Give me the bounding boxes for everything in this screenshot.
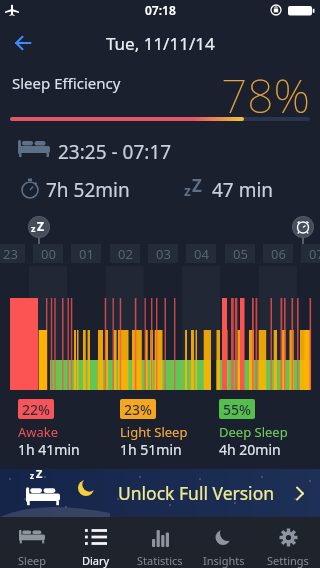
button[interactable]: z (28, 216, 50, 246)
button[interactable]: Sleep (0, 517, 64, 568)
button[interactable]: Statistics (128, 517, 192, 568)
staticText: 02 (118, 245, 133, 263)
staticText: 55% (223, 400, 251, 419)
staticText: Deep Sleep (219, 423, 288, 441)
button[interactable]: z (0, 469, 320, 517)
staticText: Sleep (18, 553, 47, 568)
staticText: Diary (82, 553, 110, 568)
button[interactable] (292, 216, 314, 246)
staticText: Sleep Efficiency (12, 73, 121, 93)
staticText: 23:25 - 07:17 (58, 139, 172, 165)
staticText: Z (37, 218, 44, 234)
staticText: Unlock Full Version (118, 481, 275, 505)
staticText: Settings (267, 553, 309, 568)
button[interactable]: Diary (64, 517, 128, 568)
button[interactable]: 23% (120, 399, 156, 419)
staticText: Light Sleep (120, 423, 188, 441)
staticText: 7h 52min (46, 177, 130, 203)
staticText: Insights (203, 553, 245, 568)
button[interactable]: Insights (192, 517, 256, 568)
staticText: 00 (41, 245, 56, 263)
staticText: Awake (18, 423, 59, 441)
staticText: 47 min (212, 177, 274, 203)
staticText: 06 (271, 245, 286, 263)
staticText: 07 (309, 245, 320, 263)
staticText: 78% (221, 64, 310, 127)
staticText: 1h 51min (120, 440, 182, 459)
staticText: z (31, 222, 36, 234)
staticText: 22% (22, 400, 50, 419)
staticText: Statistics (137, 553, 183, 568)
button[interactable]: Settings (256, 517, 320, 568)
staticText: Tue, 11/11/14 (106, 32, 215, 55)
staticText: Z (36, 466, 43, 481)
staticText: z (184, 181, 191, 200)
staticText: Z (192, 174, 202, 197)
staticText: 04 (194, 245, 209, 263)
staticText: 4h 20min (219, 440, 281, 459)
button[interactable]: 55% (219, 399, 255, 419)
staticText: 07:18 (145, 2, 176, 18)
staticText: 1h 41min (18, 440, 80, 459)
staticText: z (30, 470, 34, 481)
staticText: 03 (156, 245, 171, 263)
button[interactable]: 22% (18, 399, 54, 419)
staticText: 23% (124, 400, 152, 419)
staticText: 01 (79, 245, 94, 263)
staticText: 05 (233, 245, 248, 263)
staticText: 23 (3, 245, 18, 263)
button[interactable] (6, 30, 40, 56)
